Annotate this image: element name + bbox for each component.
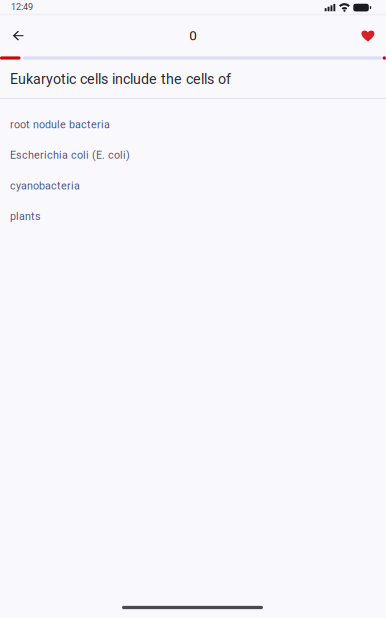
staticText: cyanobacteria <box>10 179 80 192</box>
staticText: 0 <box>189 28 197 43</box>
button[interactable]: plants <box>0 201 386 232</box>
staticText: Eukaryotic cells include the cells of <box>10 71 231 87</box>
staticText: Escherichia coli (E. coli) <box>10 149 130 161</box>
staticText: 12:49 <box>11 2 33 12</box>
button[interactable]: Escherichia coli (E. coli) <box>0 140 386 170</box>
button[interactable]: Back <box>0 18 36 54</box>
staticText: root nodule bacteria <box>10 118 110 131</box>
button[interactable]: root nodule bacteria <box>0 109 386 140</box>
button[interactable]: cyanobacteria <box>0 170 386 201</box>
staticText: plants <box>10 210 41 223</box>
button[interactable]: Favourite <box>350 18 386 54</box>
